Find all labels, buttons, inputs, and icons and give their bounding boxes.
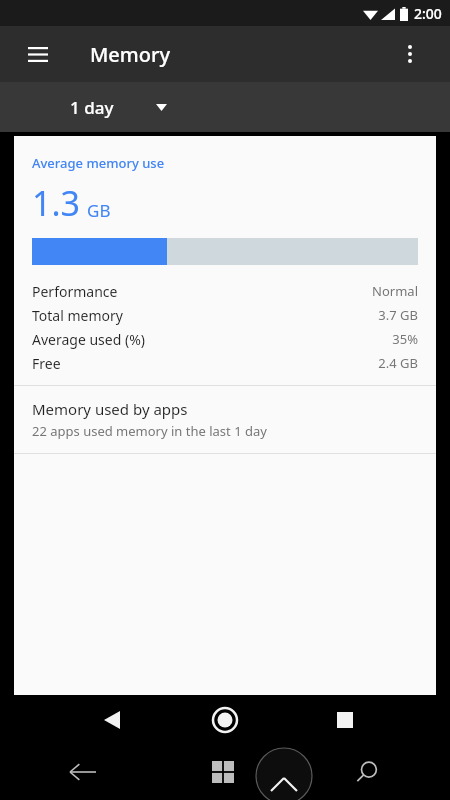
staticText: Performance — [32, 282, 118, 301]
button[interactable]: 1 day — [70, 96, 167, 119]
staticText: Memory — [90, 41, 171, 68]
staticText: Normal — [372, 282, 418, 300]
button[interactable]: Search — [346, 751, 388, 793]
staticText: Memory used by apps — [32, 399, 188, 419]
staticText: 22 apps used memory in the last 1 day — [32, 422, 267, 440]
button[interactable]: Recent apps — [325, 700, 365, 740]
staticText: 1.3 — [32, 180, 81, 226]
button[interactable]: Back — [92, 700, 132, 740]
staticText: 35% — [392, 330, 418, 348]
staticText: GB — [87, 199, 111, 222]
button[interactable]: Back — [62, 751, 104, 793]
staticText: 1 day — [70, 96, 114, 119]
button[interactable]: Expand — [242, 748, 326, 800]
staticText: 2.4 GB — [378, 354, 418, 372]
staticText: Free — [32, 354, 61, 373]
staticText: 2:00 — [414, 4, 442, 23]
button[interactable]: Start — [204, 753, 242, 791]
staticText: Average memory use — [32, 154, 165, 172]
staticText: Average used (%) — [32, 330, 145, 349]
button[interactable]: Navigation menu — [20, 36, 56, 72]
button[interactable]: Memory used by apps — [14, 386, 436, 453]
button[interactable]: More options — [392, 36, 428, 72]
staticText: 3.7 GB — [378, 306, 418, 324]
button[interactable]: Home — [205, 700, 245, 740]
staticText: Total memory — [32, 306, 123, 325]
